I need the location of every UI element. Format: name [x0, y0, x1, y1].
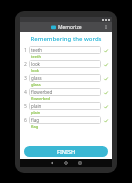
staticText: 5: [22, 103, 29, 110]
staticText: glass: [31, 75, 42, 81]
staticText: look: [31, 68, 40, 73]
staticText: Memorize: [58, 24, 82, 31]
staticText: 2: [22, 61, 29, 68]
staticText: plain: [31, 103, 42, 109]
button[interactable]: 6: [20, 116, 112, 130]
staticText: teeth: [31, 47, 43, 53]
staticText: 3: [22, 75, 29, 82]
button[interactable]: 4: [20, 88, 112, 102]
button[interactable]: 2: [20, 60, 112, 74]
button[interactable]: More options: [102, 23, 110, 31]
staticText: plain: [31, 110, 41, 115]
staticText: flowerbed: [31, 96, 50, 101]
staticText: look: [31, 61, 41, 67]
staticText: 1: [22, 47, 29, 54]
staticText: flag: [31, 117, 40, 123]
staticText: 4: [22, 89, 29, 96]
staticText: flag: [31, 124, 39, 129]
staticText: teeth: [31, 54, 41, 59]
button[interactable]: 5: [20, 102, 112, 116]
staticText: 6: [22, 117, 29, 124]
button[interactable]: Home: [59, 159, 73, 167]
staticText: flowerbed: [31, 89, 53, 95]
staticText: Remembering the words: [20, 35, 112, 43]
button[interactable]: FINISH: [24, 146, 108, 157]
button[interactable]: Back: [45, 159, 59, 167]
button[interactable]: 3: [20, 74, 112, 88]
button[interactable]: 1: [20, 46, 112, 60]
button[interactable]: Recent apps: [73, 159, 87, 167]
staticText: glass: [31, 82, 41, 87]
staticText: FINISH: [57, 148, 76, 155]
